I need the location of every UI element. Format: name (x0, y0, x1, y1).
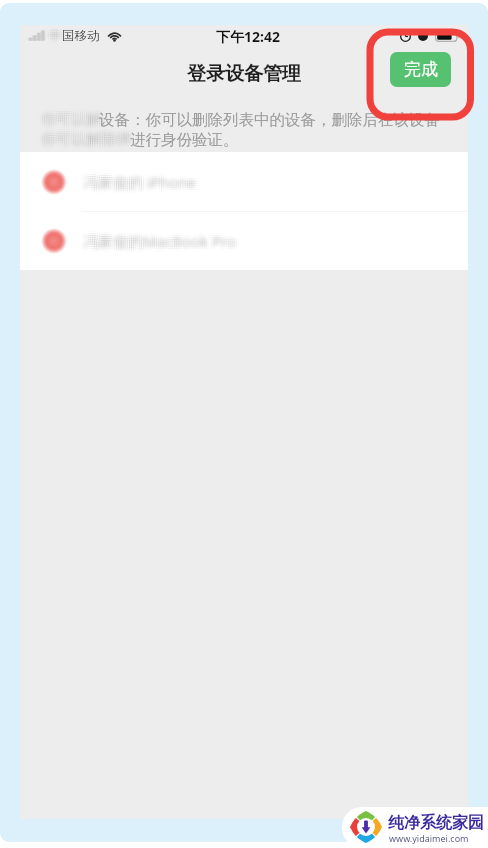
staticText: 中 (49, 31, 62, 47)
staticText: 你可以解 (37, 106, 97, 125)
staticText: 你可以解除绑 (41, 134, 131, 153)
button[interactable]: Remove device (20, 212, 468, 270)
other: Remove device (41, 228, 67, 254)
staticText: 冯家俊的 iPhone (83, 176, 196, 196)
staticText: 你可以解 (45, 110, 105, 129)
staticText: 中 (52, 31, 65, 47)
staticText: 冯家俊的 iPhone (85, 176, 198, 196)
staticText: 冯家俊的 iPhone (87, 174, 200, 194)
staticText: 中 (51, 26, 64, 42)
staticText: 冯家俊的MacBook Pro (87, 231, 241, 251)
staticText: 中 (46, 25, 59, 41)
staticText: 中 (49, 30, 62, 46)
staticText: 中 (47, 31, 60, 47)
staticText: 冯家俊的 iPhone (79, 176, 192, 196)
staticText: 你可以解除绑 (43, 126, 133, 145)
staticText: 你可以解 (41, 112, 101, 131)
staticText: 你可以解除绑 (37, 134, 127, 153)
staticText: 你可以解 (43, 106, 103, 125)
staticText: 冯家俊的MacBook Pro (81, 235, 235, 255)
staticText: 你可以解 (39, 110, 99, 129)
staticText: 登录设备管理 (187, 62, 301, 86)
staticText: 你可以解除绑 (45, 130, 135, 149)
staticText: 你可以解 (45, 108, 105, 127)
staticText: 你可以解 (41, 110, 101, 129)
staticText: 冯家俊的 iPhone (81, 168, 194, 188)
staticText: 冯家俊的 iPhone (87, 170, 200, 190)
staticText: 冯家俊的MacBook Pro (83, 229, 237, 249)
staticText: 完成 (404, 59, 438, 80)
staticText: 你可以解 (39, 108, 99, 127)
staticText: 你可以解除绑 (43, 130, 133, 149)
staticText: 中 (46, 31, 59, 47)
staticText: 你可以解 (37, 108, 97, 127)
staticText: 中 (49, 25, 62, 41)
staticText: 你可以解除绑 (45, 126, 135, 145)
staticText: 冯家俊的 iPhone (85, 174, 198, 194)
staticText: 你可以解 (39, 114, 99, 133)
staticText: 你可以解 (37, 112, 97, 131)
staticText: 冯家俊的MacBook Pro (81, 231, 235, 251)
staticText: 你可以解 (41, 106, 101, 125)
staticText: 中 (52, 25, 65, 41)
staticText: 你可以解除绑 (41, 128, 131, 147)
staticText: 你可以解 (43, 112, 103, 131)
staticText: 你可以解除绑 (39, 126, 129, 145)
staticText: 你可以解 (39, 106, 99, 125)
staticText: 中 (51, 30, 64, 46)
staticText: 冯家俊的 iPhone (79, 170, 192, 190)
staticText: 你可以解除绑 (45, 128, 135, 147)
staticText: 中 (47, 28, 60, 44)
staticText: 你可以解除绑 (41, 132, 131, 151)
other: Remove device (41, 169, 67, 195)
staticText: 你可以解 (41, 114, 101, 133)
staticText: 冯家俊的MacBook Pro (83, 227, 237, 247)
staticText: 中 (52, 30, 65, 46)
staticText: 冯家俊的MacBook Pro (85, 235, 239, 255)
staticText: 你可以解除绑 (37, 130, 127, 149)
staticText: 下午12:42 (216, 27, 280, 46)
staticText: 冯家俊的 iPhone (79, 174, 192, 194)
staticText: 纯净系统家园 (388, 813, 484, 833)
staticText: 中 (51, 25, 64, 41)
staticText: 国移动 (62, 28, 100, 44)
staticText: 你可以解除绑 (37, 128, 127, 147)
staticText: 中 (46, 28, 59, 44)
staticText: 你可以解 (45, 106, 105, 125)
button[interactable]: 完成 (390, 52, 451, 87)
staticText: 冯家俊的 iPhone (81, 170, 194, 190)
staticText: 你可以解 (39, 112, 99, 131)
staticText: 你可以解除绑 (41, 130, 131, 149)
staticText: 你可以解 (37, 114, 97, 133)
staticText: 冯家俊的MacBook Pro (85, 227, 239, 247)
staticText: 你可以解除绑 (45, 132, 135, 151)
staticText: 中 (47, 25, 60, 41)
staticText: 冯家俊的MacBook Pro (83, 233, 237, 253)
staticText: 冯家俊的MacBook Pro (79, 227, 233, 247)
staticText: 冯家俊的 iPhone (79, 168, 192, 188)
staticText: 冯家俊的 iPhone (83, 170, 196, 190)
staticText: 冯家俊的MacBook Pro (87, 235, 241, 255)
staticText: 进行身份验证。 (130, 130, 239, 150)
staticText: 你可以解 (43, 114, 103, 133)
staticText: 冯家俊的MacBook Pro (79, 235, 233, 255)
staticText: 中 (47, 26, 60, 42)
staticText: 冯家俊的MacBook Pro (85, 229, 239, 249)
staticText: 冯家俊的MacBook Pro (87, 233, 241, 253)
staticText: 冯家俊的 iPhone (83, 174, 196, 194)
staticText: 冯家俊的 iPhone (85, 172, 198, 192)
staticText: 冯家俊的 iPhone (87, 168, 200, 188)
button[interactable]: Remove device (20, 152, 468, 211)
staticText: 中 (51, 31, 64, 47)
staticText: 你可以解除绑 (43, 132, 133, 151)
staticText: 冯家俊的MacBook Pro (85, 233, 239, 253)
staticText: 中 (46, 26, 59, 42)
staticText: 你可以解除绑 (39, 128, 129, 147)
staticText: 冯家俊的MacBook Pro (81, 229, 235, 249)
staticText: 冯家俊的 iPhone (79, 172, 192, 192)
staticText: 你可以解除绑 (39, 134, 129, 153)
staticText: 中 (51, 28, 64, 44)
staticText: 冯家俊的MacBook Pro (83, 235, 237, 255)
staticText: 冯家俊的MacBook Pro (79, 233, 233, 253)
staticText: 冯家俊的MacBook Pro (79, 231, 233, 251)
